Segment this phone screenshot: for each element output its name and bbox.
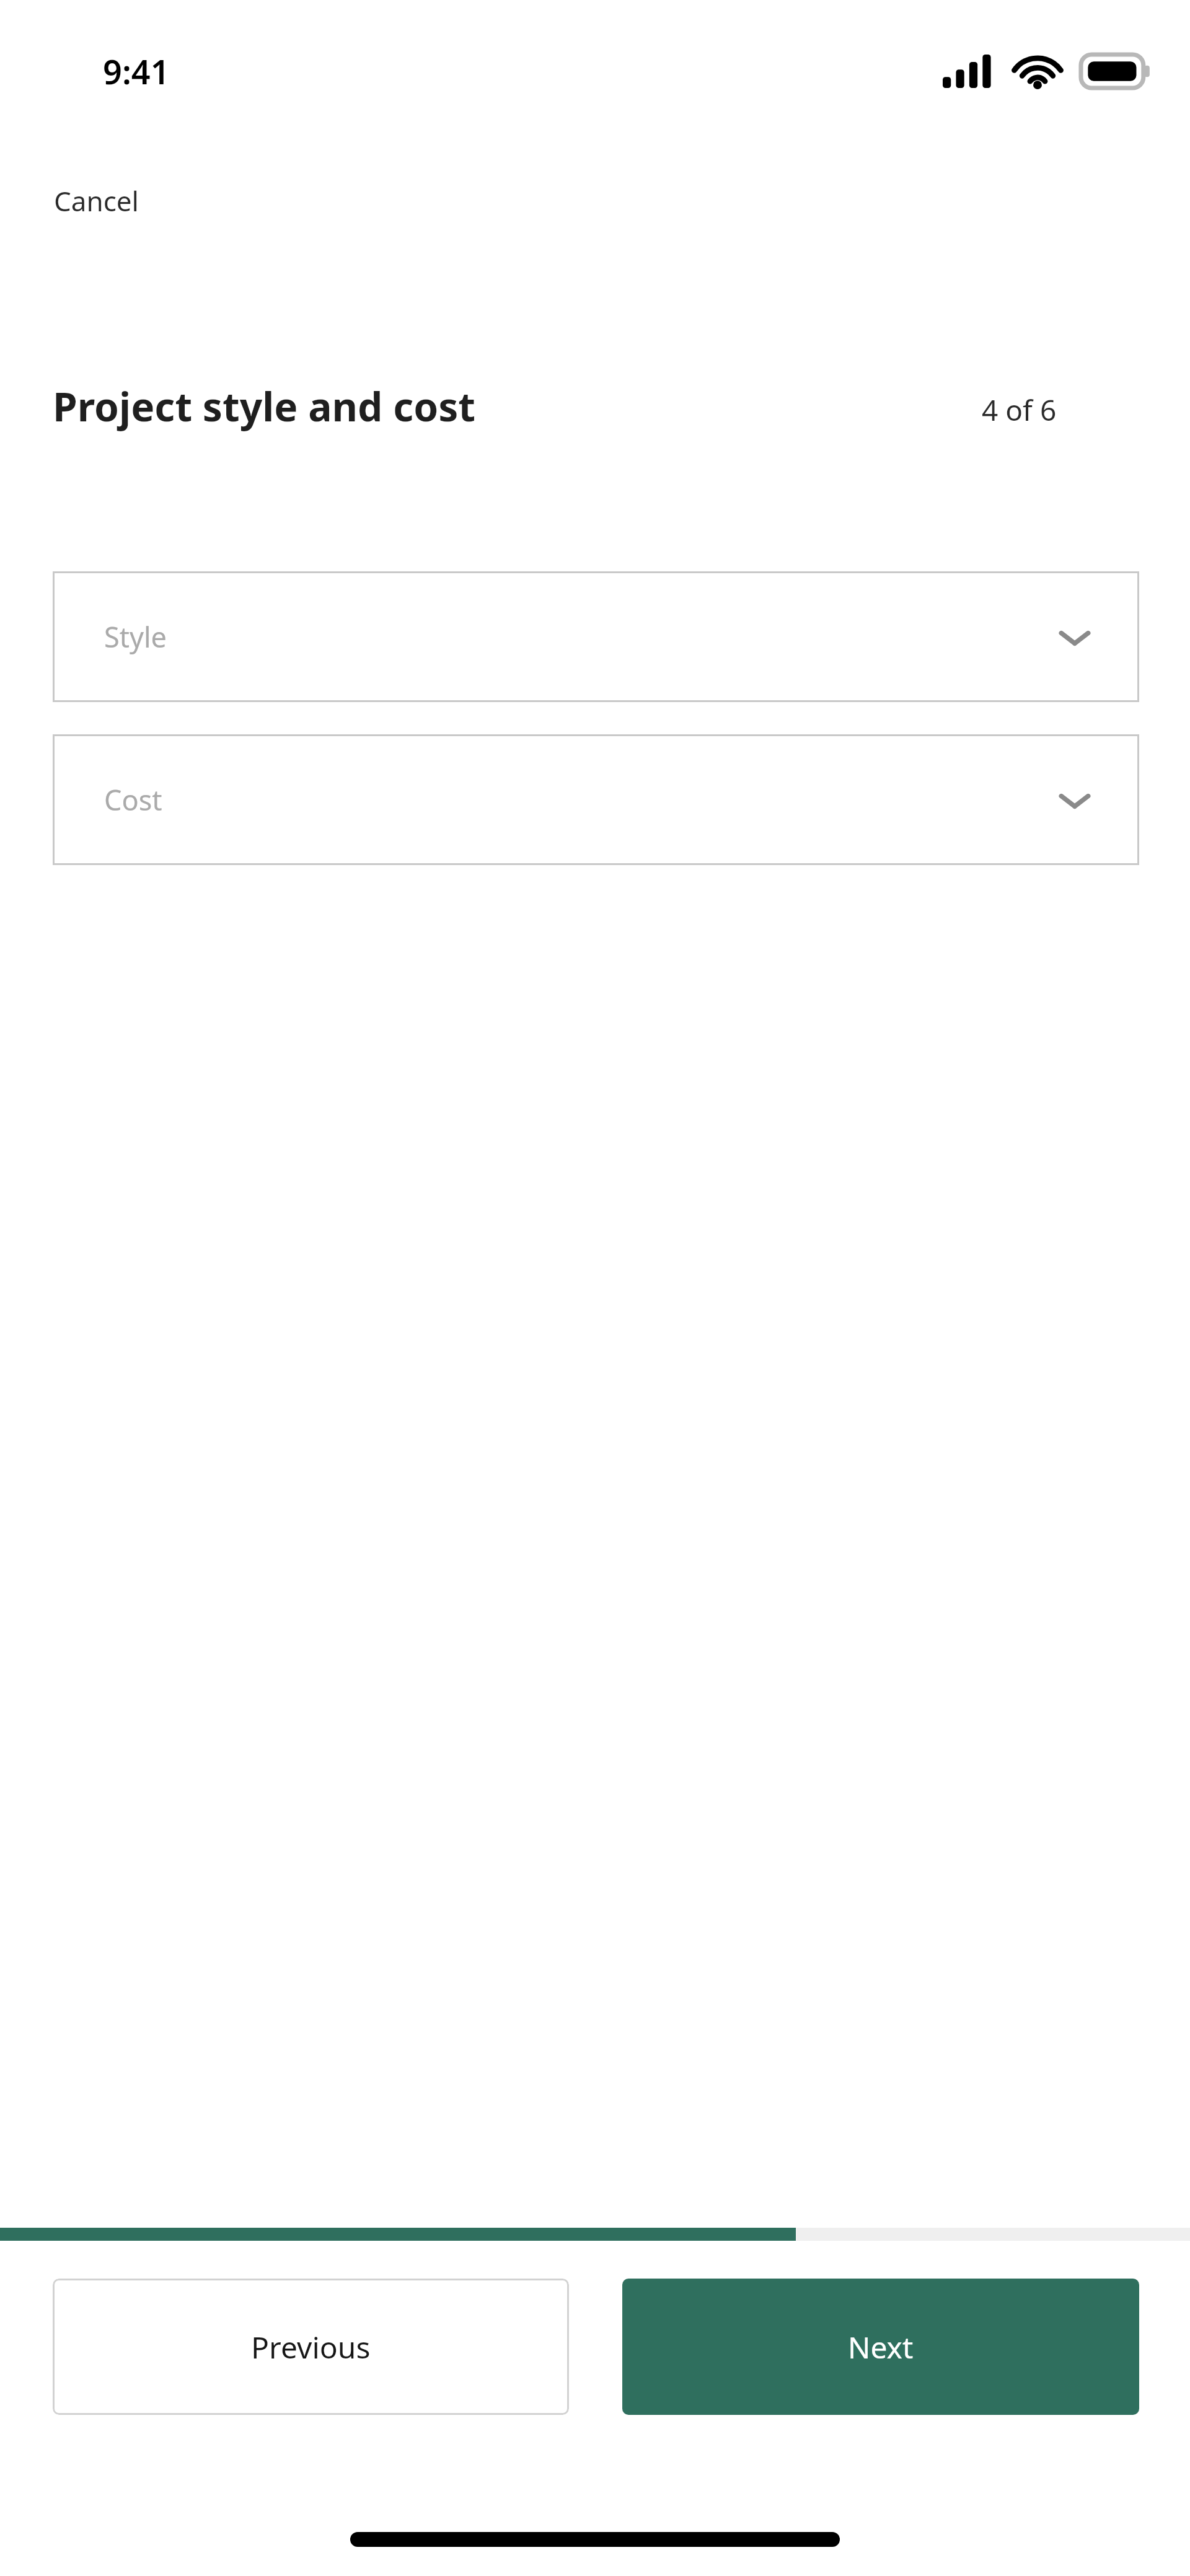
staticText: Project style and cost bbox=[53, 379, 476, 433]
button[interactable]: Style bbox=[53, 571, 1139, 702]
staticText: Cost bbox=[104, 781, 162, 819]
button[interactable]: Previous bbox=[53, 2279, 569, 2415]
other: Expand Cost bbox=[1055, 780, 1095, 820]
button[interactable]: Cost bbox=[53, 734, 1139, 865]
staticText: Previous bbox=[251, 2327, 371, 2367]
staticText: Style bbox=[104, 618, 167, 656]
button[interactable]: Next bbox=[622, 2279, 1139, 2415]
staticText: Next bbox=[848, 2327, 914, 2367]
staticText: 4 of 6 bbox=[982, 390, 1057, 429]
staticText: 9:41 bbox=[103, 48, 170, 94]
button[interactable]: Cancel bbox=[54, 182, 139, 219]
staticText: Cancel bbox=[54, 182, 139, 219]
other: Expand Style bbox=[1055, 617, 1095, 657]
